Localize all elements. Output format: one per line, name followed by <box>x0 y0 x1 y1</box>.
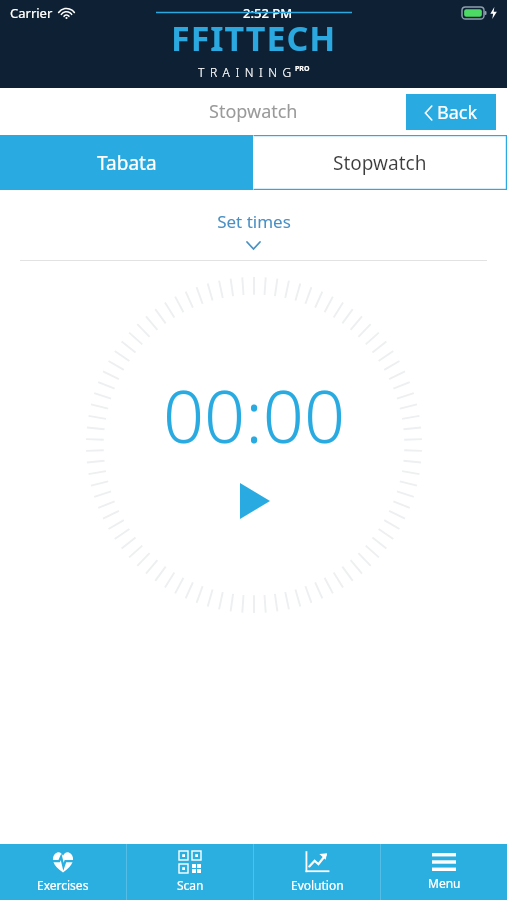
button[interactable]: Back <box>406 94 496 130</box>
staticText: Evolution <box>291 877 344 893</box>
button[interactable]: Exercises <box>0 844 126 900</box>
staticText: Menu <box>428 875 461 891</box>
button[interactable]: Stopwatch <box>253 135 507 190</box>
staticText: T R A I N I N G <box>198 64 293 80</box>
button[interactable]: Start <box>232 478 278 524</box>
staticText: Exercises <box>37 877 89 893</box>
button[interactable]: Evolution <box>254 844 380 900</box>
staticText: Stopwatch <box>333 150 427 176</box>
staticText: FFITTECH <box>171 15 337 61</box>
staticText: Stopwatch <box>209 99 298 124</box>
button[interactable]: Tabata <box>0 135 253 190</box>
staticText: PRO <box>295 64 310 74</box>
button[interactable]: Scan <box>127 844 253 900</box>
staticText: Scan <box>177 877 204 893</box>
staticText: 2:52 PM <box>243 4 293 22</box>
staticText: Tabata <box>97 150 157 176</box>
staticText: Back <box>437 100 478 125</box>
button[interactable]: Set times <box>0 190 507 260</box>
staticText: Carrier <box>10 4 53 22</box>
staticText: 00:00 <box>163 366 346 464</box>
staticText: Set times <box>217 210 291 233</box>
button[interactable]: Menu <box>381 844 507 900</box>
